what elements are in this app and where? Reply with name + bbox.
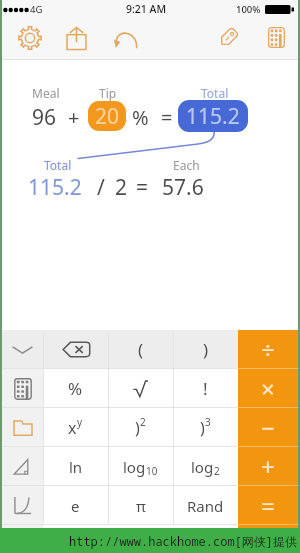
button[interactable]: π bbox=[108, 486, 173, 525]
button[interactable]: Tag bbox=[213, 21, 243, 54]
button[interactable]: log bbox=[173, 447, 238, 486]
staticText: 115.2 bbox=[186, 102, 240, 131]
staticText: ( bbox=[138, 338, 144, 361]
staticText: = bbox=[261, 489, 275, 522]
staticText: Total bbox=[44, 157, 72, 173]
staticText: e bbox=[71, 496, 80, 516]
staticText: 3 bbox=[205, 415, 211, 429]
staticText: 2 bbox=[214, 464, 220, 478]
button[interactable]: x bbox=[43, 408, 108, 447]
staticText: % bbox=[68, 377, 83, 400]
staticText: x bbox=[68, 417, 77, 439]
staticText: log bbox=[123, 457, 146, 477]
staticText: × bbox=[261, 372, 275, 405]
button[interactable]: e bbox=[43, 486, 108, 525]
staticText: ! bbox=[203, 377, 208, 400]
staticText: % bbox=[132, 104, 149, 131]
staticText: y bbox=[77, 415, 83, 429]
staticText: 9:21 AM bbox=[126, 2, 167, 16]
staticText: 4G bbox=[30, 3, 43, 16]
staticText: Meal bbox=[32, 85, 60, 101]
button[interactable]: ( bbox=[108, 330, 173, 369]
button[interactable]: Share bbox=[61, 21, 91, 54]
staticText: / bbox=[97, 173, 105, 202]
button[interactable]: minus bbox=[238, 408, 298, 447]
staticText: 2 bbox=[140, 415, 146, 429]
staticText: http://www.hackhome.com[网侠]提供 bbox=[69, 533, 298, 549]
button[interactable]: Rand bbox=[173, 486, 238, 525]
button[interactable]: multiply bbox=[238, 369, 298, 408]
staticText: ) bbox=[203, 338, 209, 361]
staticText: − bbox=[261, 411, 275, 444]
staticText: 96 bbox=[32, 103, 57, 132]
button[interactable]: divide bbox=[238, 330, 298, 369]
button[interactable]: ! bbox=[173, 369, 238, 408]
button[interactable]: Calculator bbox=[2, 369, 43, 408]
staticText: + bbox=[68, 104, 80, 131]
staticText: Rand bbox=[187, 496, 224, 516]
button[interactable]: Collapse keyboard bbox=[2, 330, 43, 369]
staticText: π bbox=[136, 496, 146, 516]
staticText: Each bbox=[173, 157, 200, 173]
staticText: Total bbox=[201, 85, 229, 101]
staticText: log bbox=[191, 457, 214, 477]
button[interactable] bbox=[108, 369, 173, 408]
button[interactable]: ) bbox=[173, 408, 238, 447]
button[interactable] bbox=[43, 330, 108, 369]
button[interactable]: 115.2 bbox=[178, 100, 248, 132]
button[interactable]: ) bbox=[173, 330, 238, 369]
button[interactable]: ) bbox=[108, 408, 173, 447]
button[interactable]: equals bbox=[238, 486, 298, 525]
staticText: = bbox=[161, 104, 173, 131]
button[interactable]: Geometry bbox=[2, 447, 43, 486]
staticText: + bbox=[261, 450, 275, 483]
button[interactable]: plus bbox=[238, 447, 298, 486]
staticText: ln bbox=[69, 457, 83, 477]
staticText: 10 bbox=[146, 464, 158, 478]
button[interactable]: log bbox=[108, 447, 173, 486]
staticText: ) bbox=[200, 417, 205, 439]
button[interactable]: ln bbox=[43, 447, 108, 486]
button[interactable]: Files bbox=[2, 408, 43, 447]
button[interactable]: 20 bbox=[88, 101, 126, 131]
staticText: 100% bbox=[236, 3, 261, 16]
staticText: 57.6 bbox=[162, 173, 204, 202]
staticText: 20 bbox=[95, 102, 120, 131]
staticText: = bbox=[136, 173, 149, 202]
staticText: 115.2 bbox=[28, 173, 82, 202]
staticText: ÷ bbox=[261, 333, 275, 366]
staticText: 2 bbox=[115, 173, 128, 202]
button[interactable]: Keypad bbox=[261, 21, 291, 54]
staticText: Tip bbox=[99, 85, 117, 101]
button[interactable]: % bbox=[43, 369, 108, 408]
button[interactable]: Settings bbox=[15, 21, 45, 54]
button[interactable]: Graph bbox=[2, 486, 43, 525]
staticText: ) bbox=[135, 417, 140, 439]
button[interactable]: Undo bbox=[111, 21, 141, 54]
